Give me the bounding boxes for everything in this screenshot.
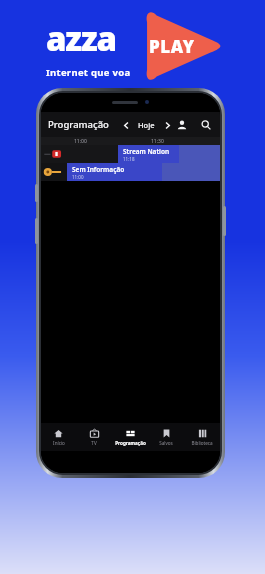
staticText: Sem Informação (72, 165, 125, 174)
button[interactable]: Stream Nation (118, 145, 179, 163)
button[interactable]: Biblioteca (184, 423, 220, 451)
staticText: Programação (115, 440, 146, 446)
button[interactable]: Salvos (148, 423, 184, 451)
staticText: Internet que voa (46, 66, 131, 79)
staticText: azza (46, 16, 116, 61)
button[interactable]: Sem Informação (67, 163, 162, 181)
button[interactable]: Hoje (138, 120, 155, 130)
staticText: 11:00 (72, 174, 84, 180)
button[interactable]: Dia anterior (119, 118, 133, 132)
staticText: 11:30 (151, 138, 164, 145)
staticText: Salvos (159, 440, 173, 446)
button[interactable]: Próximo dia (160, 118, 174, 132)
staticText: PLAY (149, 35, 195, 58)
button[interactable]: Perfil (174, 117, 190, 133)
button[interactable]: TV (76, 423, 112, 451)
staticText: TV (91, 440, 97, 446)
staticText: Biblioteca (191, 440, 213, 446)
staticText: Stream Nation (123, 147, 170, 156)
button[interactable]: Sem Informação (41, 163, 220, 181)
staticText: 11:00 (74, 138, 87, 145)
button[interactable]: Programação (48, 118, 109, 131)
button[interactable]: Stream Nation (41, 145, 220, 163)
button[interactable]: Pesquisar (199, 117, 213, 133)
button[interactable]: Início (41, 423, 76, 451)
staticText: 11:18 (123, 156, 135, 162)
staticText: Início (53, 440, 65, 446)
button[interactable]: Programação (112, 423, 148, 451)
